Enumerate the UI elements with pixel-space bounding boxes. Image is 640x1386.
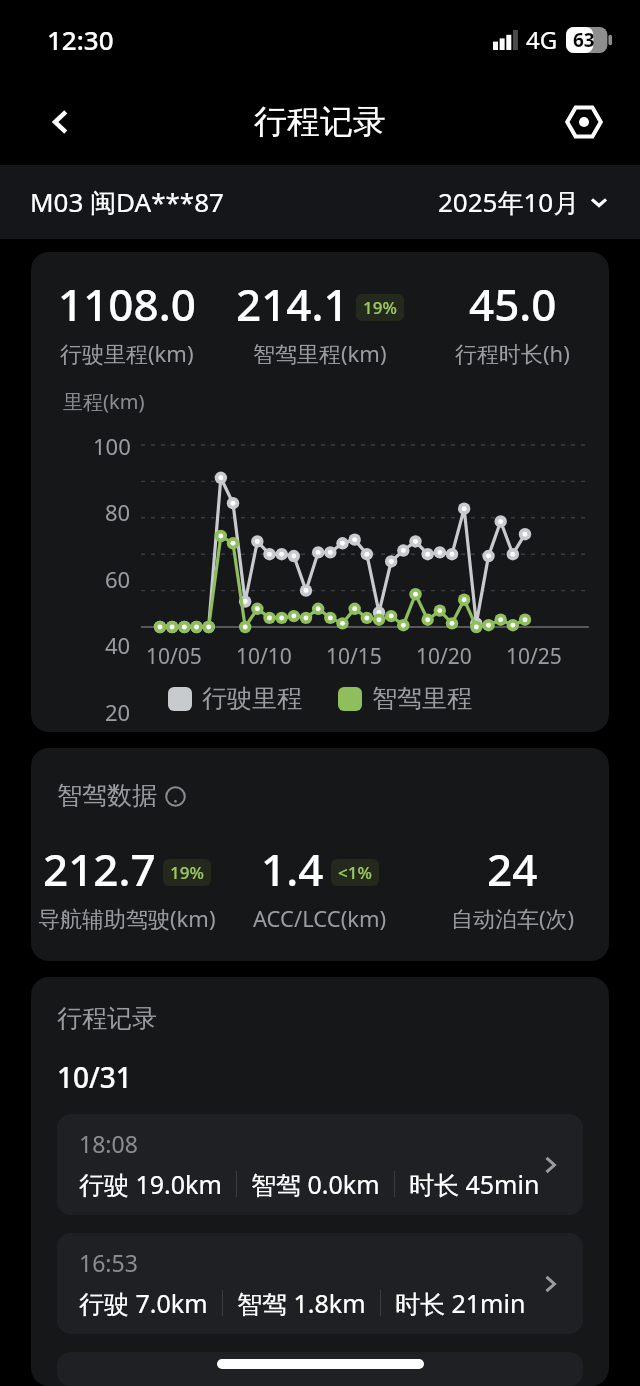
- button[interactable]: Back: [34, 95, 88, 149]
- staticText: 10/15: [326, 642, 382, 671]
- staticText: 行驶里程: [202, 683, 302, 714]
- button[interactable]: 2025年10月: [438, 184, 610, 220]
- staticText: 20: [105, 697, 131, 727]
- staticText: ACC/LCC(km): [253, 903, 387, 933]
- button[interactable]: [57, 1352, 583, 1386]
- button[interactable]: Help: [163, 784, 187, 808]
- staticText: 智驾数据: [57, 780, 157, 811]
- staticText: 24: [487, 839, 538, 899]
- staticText: 60: [105, 564, 131, 594]
- staticText: M03 闽DA***87: [30, 184, 224, 220]
- staticText: 智驾 1.8km: [237, 1286, 366, 1320]
- staticText: 智驾里程: [372, 683, 472, 714]
- staticText: 里程(km): [63, 388, 145, 415]
- staticText: 1.4: [261, 839, 324, 899]
- staticText: 212.7: [43, 839, 156, 899]
- staticText: 4G: [526, 23, 558, 56]
- staticText: 18:08: [79, 1128, 138, 1159]
- staticText: <1%: [338, 861, 372, 884]
- staticText: 时长 21min: [395, 1286, 526, 1320]
- staticText: 40: [105, 630, 131, 660]
- staticText: 80: [105, 497, 131, 527]
- staticText: 10/10: [236, 642, 292, 671]
- staticText: 63: [573, 27, 595, 53]
- staticText: 1108.0: [58, 274, 196, 334]
- staticText: 智驾里程(km): [253, 338, 387, 368]
- staticText: 行程时长(h): [455, 338, 570, 368]
- staticText: 行驶 7.0km: [79, 1286, 208, 1320]
- staticText: 214.1: [236, 274, 349, 334]
- staticText: 时长 45min: [409, 1167, 540, 1201]
- staticText: 100: [93, 431, 131, 461]
- staticText: 导航辅助驾驶(km): [38, 903, 216, 933]
- staticText: 19%: [170, 861, 204, 884]
- button[interactable]: Settings: [558, 96, 610, 148]
- staticText: 10/20: [416, 642, 472, 671]
- staticText: 10/25: [506, 642, 562, 671]
- staticText: 行驶里程(km): [60, 338, 194, 368]
- button[interactable]: 16:53: [57, 1233, 583, 1334]
- staticText: 12:30: [47, 22, 114, 57]
- staticText: 智驾 0.0km: [251, 1167, 380, 1201]
- staticText: 行程记录: [254, 101, 386, 143]
- staticText: 行程记录: [57, 1003, 157, 1034]
- staticText: 行驶 19.0km: [79, 1167, 222, 1201]
- staticText: 19%: [363, 296, 397, 319]
- staticText: 16:53: [79, 1247, 138, 1278]
- button[interactable]: 18:08: [57, 1114, 583, 1215]
- staticText: 10/31: [57, 1058, 132, 1096]
- staticText: 自动泊车(次): [451, 903, 575, 933]
- staticText: 45.0: [469, 274, 557, 334]
- staticText: 2025年10月: [438, 184, 580, 220]
- staticText: 10/05: [146, 642, 202, 671]
